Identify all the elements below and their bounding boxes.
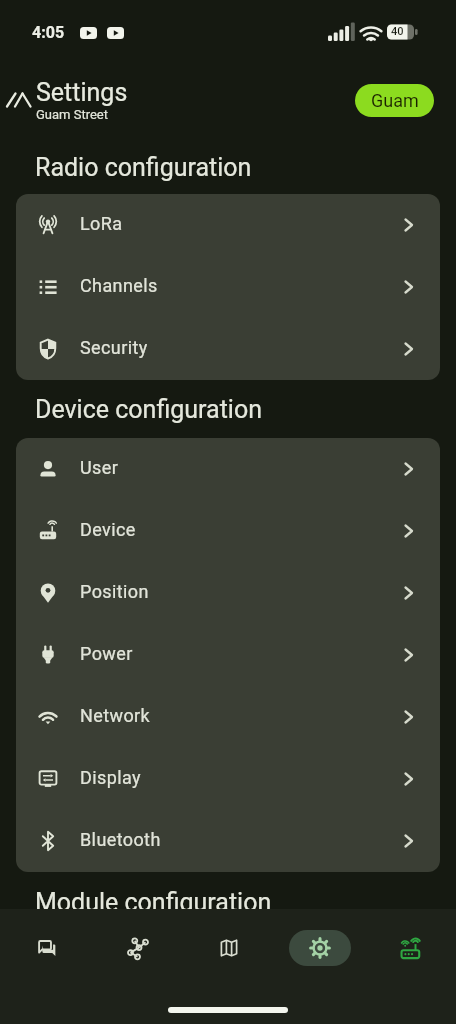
button[interactable] bbox=[274, 909, 365, 987]
staticText: Channels bbox=[80, 275, 158, 296]
button[interactable]: User bbox=[16, 438, 440, 500]
staticText: Guam Street bbox=[36, 107, 109, 122]
staticText: Bluetooth bbox=[80, 829, 161, 850]
staticText: Position bbox=[80, 581, 149, 602]
staticText: 4:05 bbox=[32, 23, 65, 42]
staticText: Security bbox=[80, 337, 148, 358]
staticText: Power bbox=[80, 643, 133, 664]
staticText: LoRa bbox=[80, 213, 123, 234]
button[interactable] bbox=[92, 909, 183, 987]
staticText: User bbox=[80, 457, 119, 478]
button[interactable]: Guam bbox=[355, 84, 434, 117]
button[interactable]: Security bbox=[16, 318, 440, 380]
button[interactable]: Channels bbox=[16, 256, 440, 318]
button[interactable]: Bluetooth bbox=[16, 810, 440, 872]
button[interactable] bbox=[183, 909, 274, 987]
button[interactable] bbox=[0, 909, 92, 987]
staticText: 40 bbox=[391, 25, 404, 38]
button[interactable]: Device bbox=[16, 500, 440, 562]
staticText: Device configuration bbox=[35, 395, 262, 424]
staticText: Radio configuration bbox=[35, 153, 252, 182]
button[interactable]: LoRa bbox=[16, 194, 440, 256]
button[interactable]: Network bbox=[16, 686, 440, 748]
staticText: Network bbox=[80, 705, 151, 726]
staticText: Module configuration bbox=[35, 888, 272, 909]
staticText: Display bbox=[80, 767, 141, 788]
staticText: Device bbox=[80, 519, 136, 540]
staticText: Guam bbox=[371, 90, 419, 111]
button[interactable]: Display bbox=[16, 748, 440, 810]
button[interactable]: Position bbox=[16, 562, 440, 624]
staticText: Settings bbox=[36, 78, 128, 107]
button[interactable] bbox=[365, 909, 456, 987]
button[interactable]: Power bbox=[16, 624, 440, 686]
